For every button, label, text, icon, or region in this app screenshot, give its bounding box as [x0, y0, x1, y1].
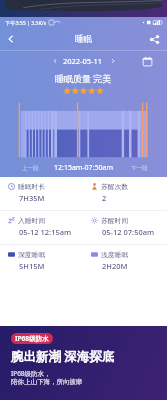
button[interactable]: Next day: [108, 56, 118, 66]
button[interactable]: 浅度睡眠: [83, 245, 167, 278]
staticText: 睡眠时长: [18, 182, 46, 191]
staticText: IP68级防水: [15, 334, 49, 343]
staticText: 腕出新潮 深海探底: [11, 348, 115, 365]
button[interactable]: Previous day: [50, 56, 60, 66]
staticText: 睡眠质量 完美: [55, 72, 112, 84]
button[interactable]: 苏醒时间: [83, 211, 167, 244]
staticText: 深度睡眠: [18, 250, 46, 259]
button[interactable]: IP68级防水: [0, 326, 167, 400]
button[interactable]: 上一段: [22, 165, 39, 172]
staticText: 苏醒次数: [101, 182, 129, 191]
staticText: 7H35M: [19, 193, 45, 203]
button[interactable]: Calendar: [142, 56, 153, 67]
staticText: 入睡时间: [18, 216, 46, 225]
button[interactable]: 睡眠时长: [0, 177, 83, 210]
staticText: 05-12 12:15am: [19, 227, 72, 237]
staticText: 陪你上山下海，所向披靡: [11, 378, 83, 386]
button[interactable]: 深度睡眠: [0, 245, 83, 278]
staticText: 2: [102, 193, 107, 203]
button[interactable]: 下一段: [131, 165, 148, 172]
staticText: 睡眠: [75, 34, 92, 45]
button[interactable]: 苏醒次数: [83, 177, 167, 210]
staticText: 浅度睡眠: [101, 250, 129, 259]
staticText: 苏醒时间: [101, 216, 129, 225]
button[interactable]: 入睡时间: [0, 211, 83, 244]
staticText: 12:15am-07:50am: [54, 163, 113, 173]
staticText: 2022-05-11: [63, 56, 103, 66]
button[interactable]: Back: [3, 31, 19, 47]
staticText: 5H15M: [19, 261, 45, 271]
staticText: IP68级防水，: [11, 369, 51, 378]
staticText: 05-12 07:50am: [102, 227, 155, 237]
staticText: 下午3:55 | 3.5K/s: [5, 19, 47, 26]
button[interactable]: Share: [149, 34, 160, 45]
staticText: 2H20M: [102, 261, 128, 271]
